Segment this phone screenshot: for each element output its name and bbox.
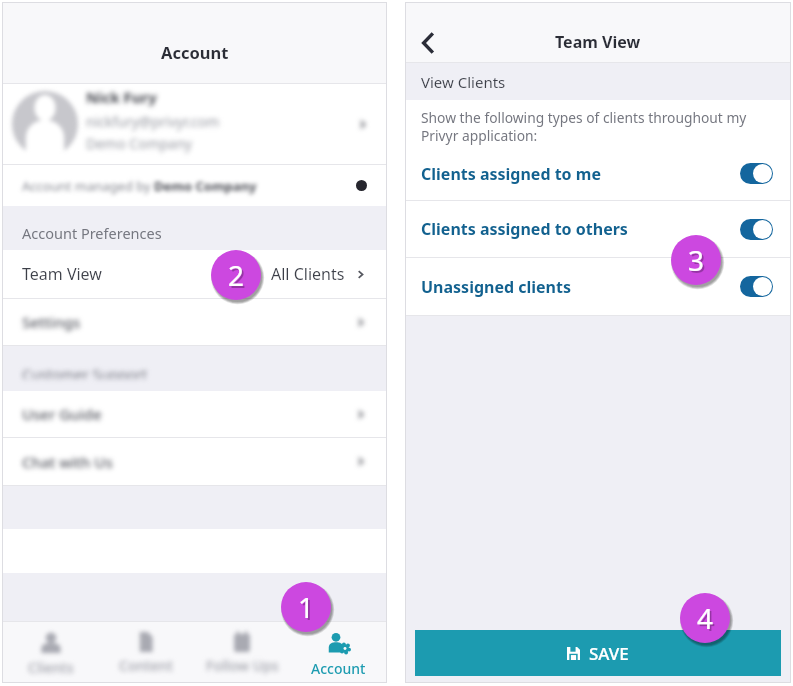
staticText: Clients assigned to others: [421, 218, 628, 240]
staticText: 2: [230, 258, 247, 296]
button[interactable]: Chat with Us: [3, 438, 386, 485]
staticText: nickfury@privyr.com: [86, 112, 220, 131]
staticText: User Guide: [22, 404, 102, 424]
staticText: Account: [161, 41, 229, 63]
staticText: Unassigned clients: [421, 276, 572, 298]
staticText: Content: [119, 656, 173, 675]
button[interactable]: Team View: [3, 250, 386, 298]
staticText: Settings: [22, 312, 81, 332]
staticText: Demo Company: [86, 134, 192, 153]
button[interactable]: Clients assigned to others: [406, 201, 790, 257]
staticText: 1: [298, 588, 315, 626]
button[interactable]: Clients assigned to me: [406, 147, 790, 200]
staticText: Account: [311, 659, 366, 678]
button[interactable]: Nick Fury: [3, 84, 386, 164]
button[interactable]: Clients: [3, 622, 98, 682]
staticText: Chat with Us: [22, 452, 113, 472]
staticText: 2: [228, 256, 245, 294]
staticText: 3: [690, 243, 707, 281]
button[interactable]: Content: [98, 622, 194, 682]
staticText: 1: [300, 590, 317, 628]
staticText: 3: [688, 241, 705, 279]
staticText: Clients: [28, 658, 74, 677]
button[interactable]: User Guide: [3, 391, 386, 437]
staticText: 4: [699, 601, 716, 639]
staticText: Team View: [22, 263, 102, 285]
staticText: Follow Ups: [206, 656, 279, 675]
button[interactable]: Settings: [3, 299, 386, 345]
button[interactable]: Follow Ups: [194, 622, 290, 682]
staticText: All Clients: [271, 263, 345, 285]
staticText: Account Preferences: [22, 223, 162, 243]
staticText: 4: [697, 599, 714, 637]
staticText: Clients assigned to me: [421, 163, 601, 185]
staticText: Account managed by Demo Company: [22, 177, 257, 195]
button[interactable]: Unassigned clients: [406, 258, 790, 315]
staticText: SAVE: [589, 642, 629, 665]
staticText: Team View: [555, 31, 641, 53]
staticText: Customer Support: [22, 364, 148, 384]
button[interactable]: Back: [408, 23, 448, 63]
staticText: Nick Fury: [86, 87, 157, 107]
button[interactable]: SAVE: [415, 630, 781, 676]
button[interactable]: Account: [290, 622, 386, 682]
staticText: View Clients: [421, 72, 506, 92]
button[interactable]: Account managed by Demo Company: [3, 165, 386, 206]
staticText: Show the following types of clients thro…: [421, 108, 766, 145]
